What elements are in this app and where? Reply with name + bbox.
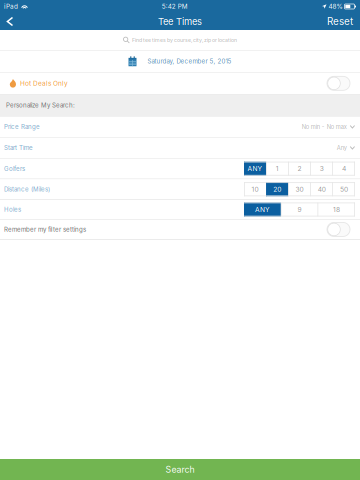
button[interactable]: 30 <box>288 182 311 196</box>
button[interactable]: Remember my filter settings <box>327 222 350 236</box>
staticText: Personalize My Search: <box>6 102 75 109</box>
staticText: 4 <box>342 165 346 173</box>
button[interactable]: 40 <box>311 182 333 196</box>
staticText: Any <box>337 144 347 151</box>
staticText: 48% <box>328 3 342 10</box>
staticText: Holes <box>4 206 21 213</box>
staticText: Search <box>165 464 194 475</box>
staticText: ANY <box>255 205 270 214</box>
staticText: 1 <box>276 165 279 173</box>
staticText: Saturday, December 5, 2015 <box>147 58 231 65</box>
button[interactable]: Find tee times by course, city, zip or l… <box>0 30 360 50</box>
staticText: 3 <box>320 165 324 173</box>
button[interactable]: Back <box>0 13 20 30</box>
staticText: No min - No max <box>302 123 347 130</box>
staticText: Golfers <box>4 165 25 172</box>
button[interactable]: 9 <box>281 202 318 216</box>
button[interactable]: 10 <box>244 182 266 196</box>
staticText: 18 <box>333 205 340 214</box>
staticText: Distance (Miles) <box>4 185 50 193</box>
staticText: iPad <box>4 3 18 10</box>
staticText: 20 <box>273 185 281 193</box>
staticText: 5:42 PM <box>162 3 188 10</box>
button[interactable]: ANY <box>244 162 266 176</box>
staticText: Start Time <box>4 144 33 151</box>
staticText: Hot Deals Only <box>20 79 68 87</box>
button[interactable]: 18 <box>318 202 355 216</box>
button[interactable]: Saturday, December 5, 2015 <box>0 51 360 72</box>
staticText: Tee Times <box>158 16 202 27</box>
button[interactable]: 2 <box>288 162 311 176</box>
button[interactable]: 3 <box>311 162 333 176</box>
staticText: 2 <box>297 165 301 173</box>
button[interactable]: 50 <box>333 182 355 196</box>
button[interactable]: 20 <box>266 182 288 196</box>
staticText: Price Range <box>4 123 40 130</box>
staticText: Find tee times by course, city, zip or l… <box>132 37 237 43</box>
button[interactable]: Start Time <box>0 138 360 158</box>
button[interactable]: 1 <box>266 162 288 176</box>
staticText: ANY <box>248 165 263 173</box>
button[interactable]: Hot Deals Only <box>327 76 350 90</box>
staticText: Remember my filter settings <box>4 226 86 233</box>
button[interactable]: ANY <box>244 202 281 216</box>
staticText: 30 <box>295 185 303 193</box>
button[interactable]: Price Range <box>0 117 360 137</box>
button[interactable]: 4 <box>333 162 355 176</box>
button[interactable]: Search <box>0 459 360 480</box>
staticText: 40 <box>318 185 326 193</box>
button[interactable]: Reset <box>327 13 360 30</box>
staticText: 9 <box>297 205 301 214</box>
staticText: 50 <box>340 185 348 193</box>
staticText: 10 <box>252 185 259 193</box>
staticText: Reset <box>327 15 353 27</box>
